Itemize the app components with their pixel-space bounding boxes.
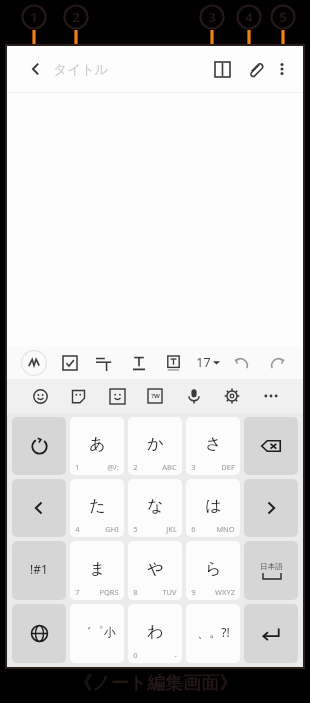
staticText: 1 <box>30 8 38 26</box>
staticText: な <box>147 496 164 516</box>
button[interactable]: Undo <box>230 351 254 375</box>
staticText: JKL <box>166 524 177 534</box>
staticText: た <box>89 496 106 516</box>
button[interactable]: Translate <box>143 384 167 408</box>
button[interactable]: Cycle characters <box>12 417 66 475</box>
staticText: 7 <box>75 587 80 597</box>
staticText: 《ノート編集画面》 <box>74 672 237 695</box>
button[interactable]: Enter <box>244 604 298 663</box>
button[interactable]: Redo <box>265 351 289 375</box>
staticText: 2 <box>133 462 138 472</box>
staticText: !#1 <box>30 561 48 577</box>
staticText: さ <box>205 434 222 454</box>
button[interactable]: Handwriting <box>21 350 47 376</box>
button[interactable]: か <box>128 417 182 475</box>
button[interactable]: Text box <box>161 351 185 375</box>
staticText: TUV <box>162 587 177 597</box>
staticText: WXYZ <box>215 587 235 597</box>
staticText: 6 <box>191 524 196 534</box>
staticText: 2 <box>72 8 80 26</box>
staticText: 3 <box>208 8 216 26</box>
button[interactable]: ま <box>70 541 124 600</box>
staticText: DEF <box>221 462 235 472</box>
button[interactable]: !#1 <box>12 541 66 600</box>
staticText: ま <box>89 559 106 579</box>
staticText: や <box>147 559 164 579</box>
staticText: 9 <box>191 587 196 597</box>
staticText: か <box>147 434 164 454</box>
button[interactable]: Paragraph style <box>92 351 116 375</box>
staticText: 1 <box>75 462 80 472</box>
button[interactable]: Change keyboard <box>12 604 66 663</box>
button[interactable]: More options <box>267 54 297 84</box>
button[interactable]: は <box>186 479 240 537</box>
button[interactable]: や <box>128 541 182 600</box>
staticText: @/: <box>107 462 119 472</box>
button[interactable]: ら <box>186 541 240 600</box>
staticText: は <box>205 496 222 516</box>
button[interactable]: ゛゜小 <box>70 604 124 663</box>
button[interactable]: Back <box>21 54 51 84</box>
staticText: ?W <box>151 392 160 400</box>
staticText: 8 <box>133 587 138 597</box>
button[interactable]: タイトル <box>53 55 123 83</box>
staticText: 4 <box>75 524 80 534</box>
button[interactable]: Emoticon <box>105 384 129 408</box>
button[interactable]: Text format <box>127 351 151 375</box>
button[interactable]: Attach <box>240 54 270 84</box>
staticText: 17 <box>196 354 211 371</box>
staticText: 、。?! <box>197 624 230 640</box>
button[interactable]: 、。?! <box>186 604 240 663</box>
button[interactable]: わ <box>128 604 182 663</box>
staticText: - <box>174 650 177 660</box>
button[interactable]: Cursor right <box>244 479 298 537</box>
button[interactable]: Settings <box>220 384 244 408</box>
staticText: 5 <box>279 8 287 26</box>
button[interactable]: Stickers <box>66 384 90 408</box>
button[interactable]: Book view <box>207 54 237 84</box>
staticText: 5 <box>133 524 138 534</box>
staticText: ABC <box>162 462 177 472</box>
button[interactable]: Emoji <box>28 384 52 408</box>
staticText: 4 <box>245 8 253 26</box>
staticText: 3 <box>191 462 196 472</box>
button[interactable]: 17 <box>196 354 220 371</box>
button[interactable]: Backspace <box>244 417 298 475</box>
button[interactable]: More <box>259 384 283 408</box>
staticText: MNO <box>216 524 235 534</box>
staticText: ゛゜小 <box>79 624 116 639</box>
button[interactable]: な <box>128 479 182 537</box>
staticText: GHI <box>105 524 119 534</box>
staticText: タイトル <box>53 61 109 78</box>
button[interactable]: さ <box>186 417 240 475</box>
button[interactable]: Space <box>244 541 298 600</box>
button[interactable]: Voice input <box>182 384 206 408</box>
button[interactable]: Checklist <box>58 351 82 375</box>
staticText: 日本語 <box>260 562 283 571</box>
button[interactable]: Cursor left <box>12 479 66 537</box>
staticText: PQRS <box>99 587 119 597</box>
button[interactable]: あ <box>70 417 124 475</box>
staticText: わ <box>147 622 164 642</box>
staticText: あ <box>89 434 106 454</box>
button[interactable]: た <box>70 479 124 537</box>
staticText: 0 <box>133 650 138 660</box>
staticText: ら <box>205 559 222 579</box>
